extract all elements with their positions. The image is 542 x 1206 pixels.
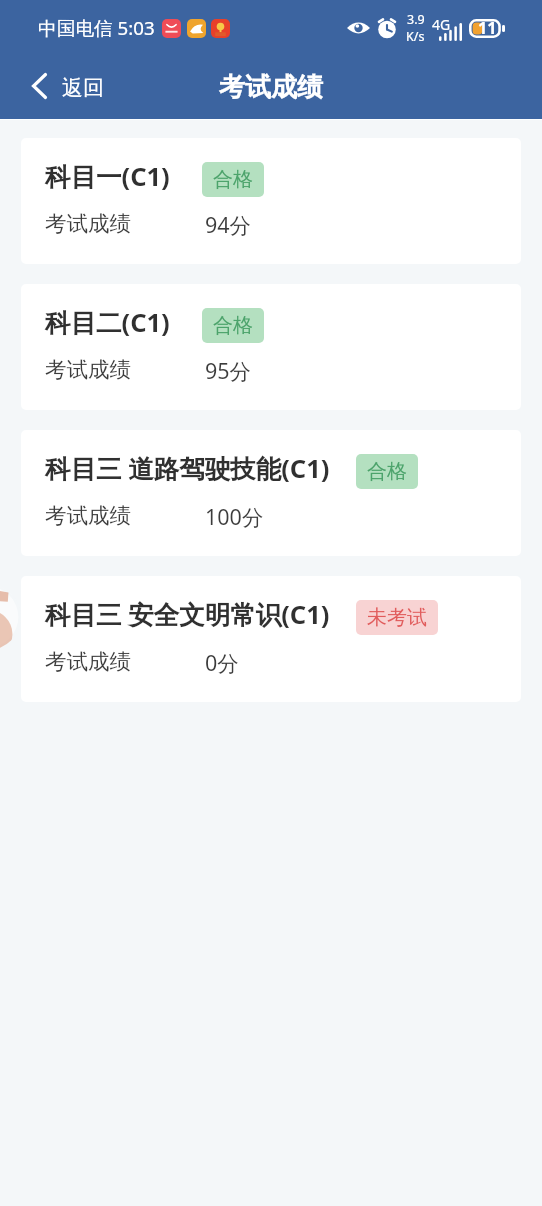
staticText: 4G [432,15,451,34]
staticText: 中国电信 5:03 [38,15,155,41]
staticText: 科目三 道路驾驶技能(C1) [45,451,330,486]
button[interactable]: 科目二(C1) [21,284,521,410]
staticText: 考试成绩 [45,210,131,237]
staticText: 未考试 [367,605,427,630]
staticText: 考试成绩 [219,71,323,104]
staticText: 95分 [205,356,252,385]
button[interactable]: 合格 [356,454,418,489]
staticText: 合格 [213,167,253,192]
staticText: 科目二(C1) [45,305,170,340]
button[interactable]: 科目三 安全文明常识(C1) [21,576,521,702]
button[interactable]: 返回 [0,65,120,111]
button[interactable]: Assistant [0,584,21,650]
button[interactable]: 合格 [202,308,264,343]
staticText: 科目一(C1) [45,159,170,194]
staticText: 科目三 安全文明常识(C1) [45,597,330,632]
button[interactable]: 未考试 [356,600,438,635]
button[interactable]: 合格 [202,162,264,197]
staticText: 100分 [205,502,264,531]
staticText: 0分 [205,648,239,677]
staticText: 考试成绩 [45,648,131,675]
staticText: 3.9 [407,11,425,28]
staticText: K/s [406,28,425,45]
staticText: 考试成绩 [45,356,131,383]
staticText: 94分 [205,210,252,239]
button[interactable]: 科目一(C1) [21,138,521,264]
button[interactable]: 科目三 道路驾驶技能(C1) [21,430,521,556]
staticText: 11 [478,17,497,39]
staticText: 返回 [62,75,104,101]
staticText: 考试成绩 [45,502,131,529]
staticText: 合格 [367,459,407,484]
staticText: 合格 [213,313,253,338]
